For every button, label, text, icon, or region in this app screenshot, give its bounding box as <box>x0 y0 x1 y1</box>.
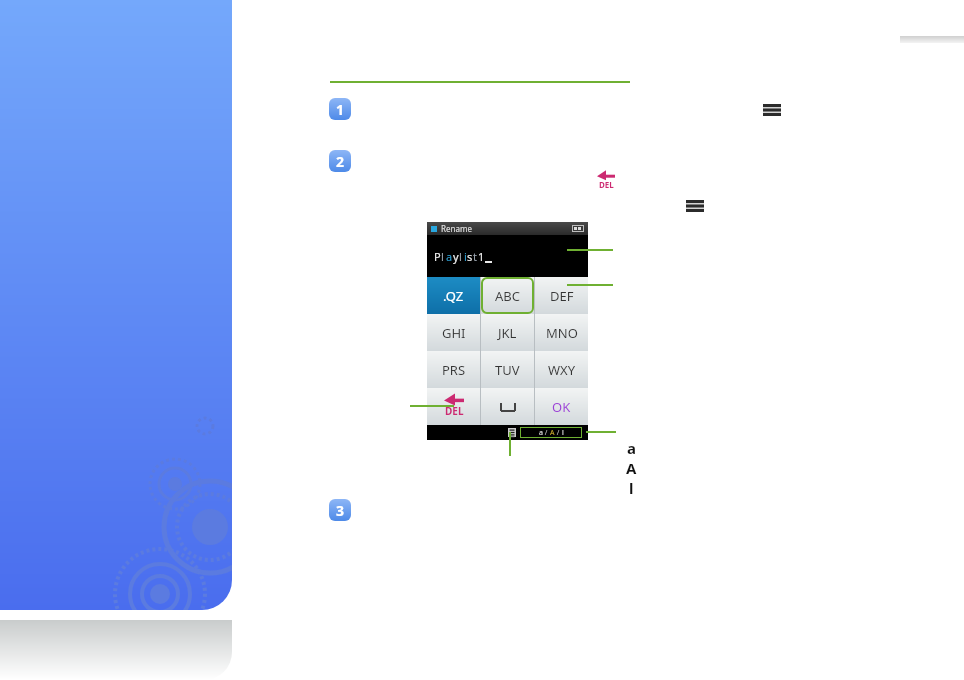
button[interactable]: 1 <box>329 98 351 120</box>
button[interactable]: TUV <box>481 351 534 388</box>
button[interactable]: GHI <box>427 314 480 351</box>
staticText: l <box>441 249 444 264</box>
button[interactable]: ​.QZ <box>427 277 480 314</box>
button[interactable]: 2 <box>329 150 351 172</box>
staticText: 3 <box>336 501 345 520</box>
staticText: 1 <box>336 100 345 119</box>
staticText: l <box>459 249 462 264</box>
button[interactable]: 3 <box>329 499 351 521</box>
staticText: WXY <box>548 361 576 379</box>
staticText: Rename <box>441 223 472 234</box>
button[interactable]: DEF <box>535 277 588 314</box>
button[interactable]: OK <box>535 388 588 425</box>
staticText: a <box>539 428 543 437</box>
button[interactable]: Menu <box>686 199 704 213</box>
staticText: TUV <box>495 361 520 379</box>
button[interactable]: DEL <box>427 388 480 425</box>
button[interactable]: ABC <box>481 277 534 314</box>
staticText: 1 <box>478 249 485 264</box>
button[interactable]: WXY <box>535 351 588 388</box>
staticText: P <box>434 249 441 264</box>
button[interactable]: JKL <box>481 314 534 351</box>
staticText: ​.QZ <box>443 287 464 305</box>
button[interactable]: Menu <box>763 103 781 117</box>
button[interactable] <box>481 388 534 425</box>
button[interactable]: PRS <box>427 351 480 388</box>
staticText: a <box>446 249 453 264</box>
staticText: DEF <box>550 287 574 305</box>
staticText: A <box>550 428 555 437</box>
staticText: l <box>629 478 634 498</box>
staticText: s <box>467 249 473 264</box>
staticText: / <box>555 428 562 437</box>
staticText: OK <box>552 398 571 416</box>
staticText: DEL <box>599 179 614 190</box>
button[interactable]: Options <box>508 428 516 437</box>
staticText: MNO <box>546 324 578 342</box>
staticText: t <box>473 249 477 264</box>
staticText: PRS <box>442 361 466 379</box>
staticText: ABC <box>495 287 520 305</box>
staticText: / <box>543 428 550 437</box>
staticText: GHI <box>442 324 466 342</box>
staticText: i <box>464 249 467 264</box>
staticText: y <box>453 249 459 264</box>
button[interactable]: MNO <box>535 314 588 351</box>
staticText: a <box>627 438 636 458</box>
staticText: DEL <box>445 404 464 418</box>
button[interactable]: a <box>521 428 581 437</box>
button[interactable]: Delete <box>595 172 617 192</box>
staticText: A <box>626 458 637 478</box>
staticText: l <box>562 428 564 437</box>
staticText: 2 <box>336 152 345 171</box>
staticText: JKL <box>498 324 517 342</box>
